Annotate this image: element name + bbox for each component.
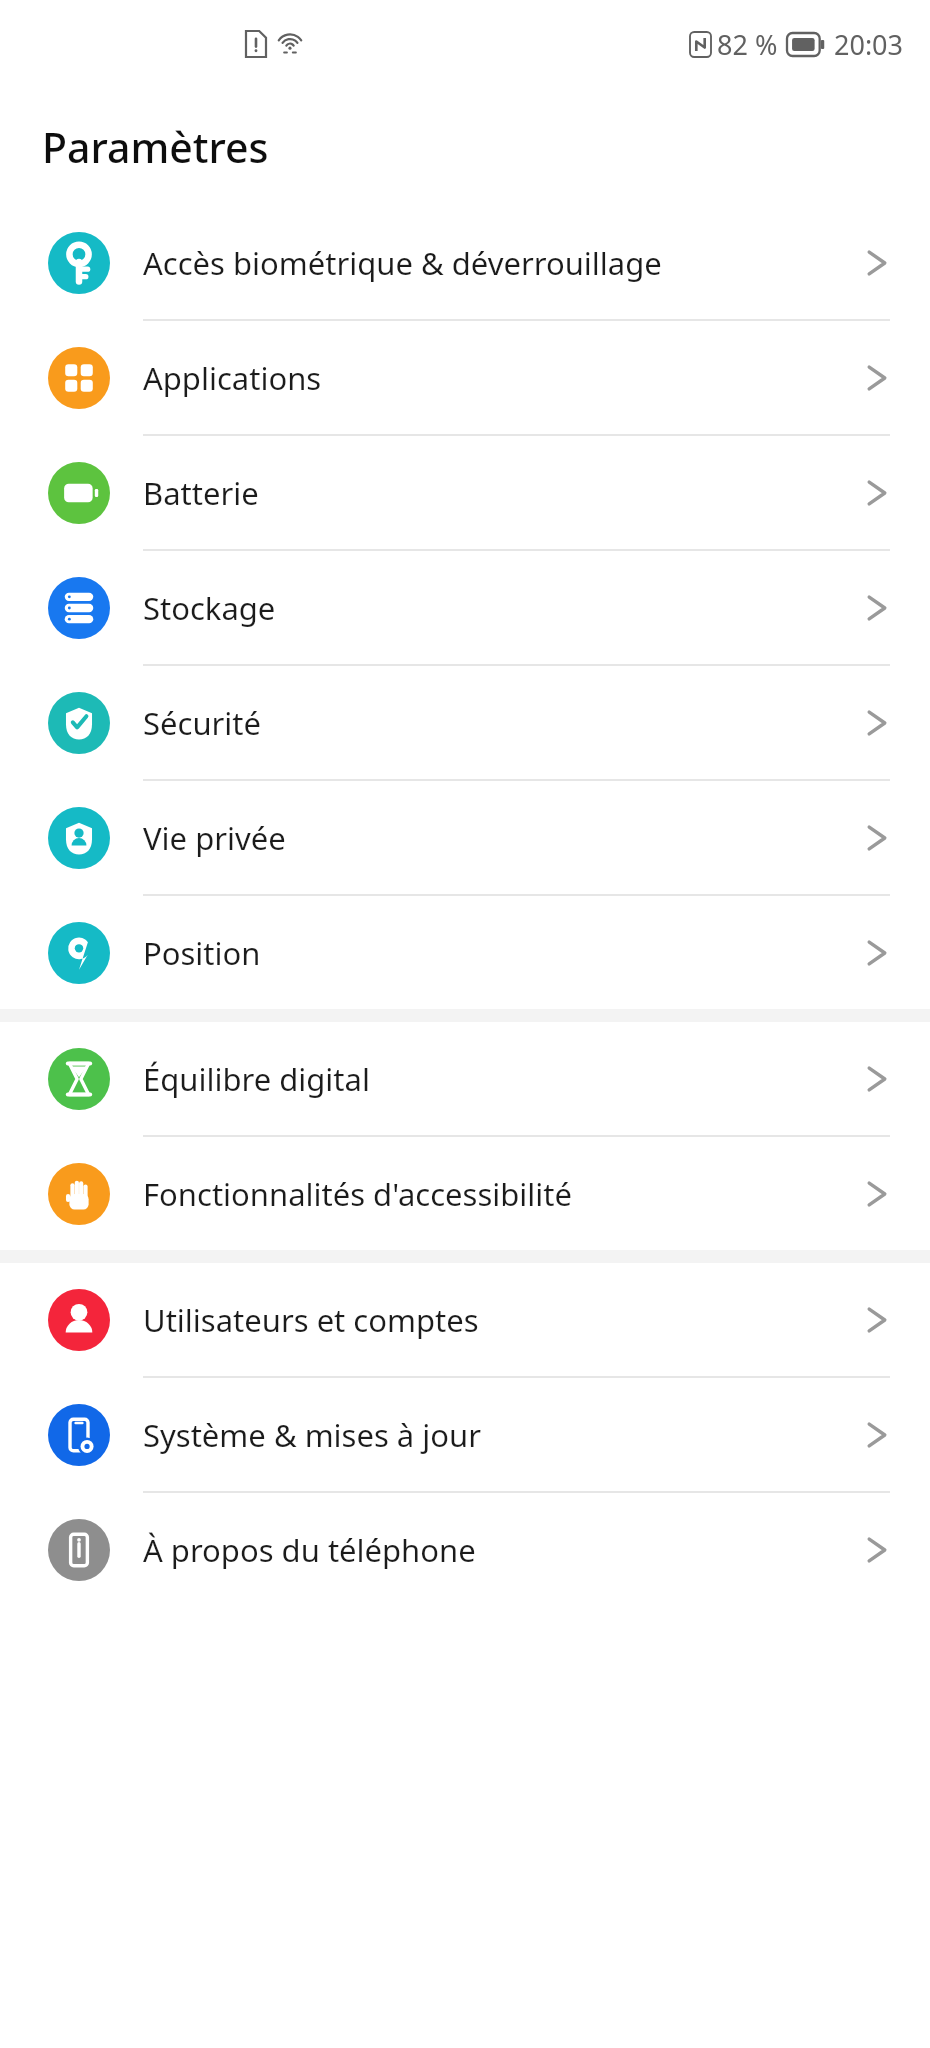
staticText: Applications: [143, 357, 864, 399]
staticText: Position: [143, 932, 864, 974]
button[interactable]: Utilisateurs et comptes: [0, 1263, 930, 1378]
staticText: 20:03: [834, 26, 904, 63]
staticText: Fonctionnalités d'accessibilité: [143, 1173, 864, 1215]
staticText: Accès biométrique & déverrouillage: [143, 242, 864, 284]
button[interactable]: Batterie: [0, 436, 930, 551]
staticText: Stockage: [143, 587, 864, 629]
button[interactable]: Position: [0, 896, 930, 1009]
button[interactable]: Applications: [0, 321, 930, 436]
staticText: Paramètres: [42, 119, 269, 175]
staticText: 82 %: [717, 26, 778, 63]
button[interactable]: Stockage: [0, 551, 930, 666]
button[interactable]: Accès biométrique & déverrouillage: [0, 206, 930, 321]
staticText: Batterie: [143, 472, 864, 514]
button[interactable]: À propos du téléphone: [0, 1493, 930, 1606]
staticText: Utilisateurs et comptes: [143, 1299, 864, 1341]
button[interactable]: Sécurité: [0, 666, 930, 781]
button[interactable]: Équilibre digital: [0, 1022, 930, 1137]
button[interactable]: Fonctionnalités d'accessibilité: [0, 1137, 930, 1250]
staticText: Équilibre digital: [143, 1058, 864, 1100]
staticText: Système & mises à jour: [143, 1414, 864, 1456]
staticText: Vie privée: [143, 817, 864, 859]
staticText: À propos du téléphone: [143, 1529, 864, 1571]
staticText: Sécurité: [143, 702, 864, 744]
button[interactable]: Système & mises à jour: [0, 1378, 930, 1493]
button[interactable]: Vie privée: [0, 781, 930, 896]
